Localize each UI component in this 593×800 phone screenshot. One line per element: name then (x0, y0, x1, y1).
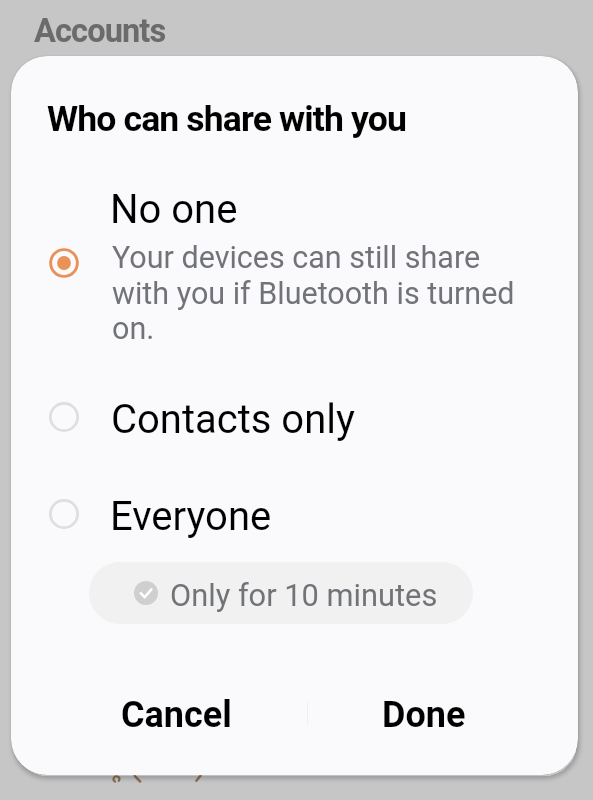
staticText: Who can share with you (47, 98, 406, 140)
staticText: Done (382, 694, 466, 736)
button[interactable]: No one (11, 180, 578, 356)
button[interactable]: Done (311, 694, 541, 761)
button[interactable]: Only for 10 minutes (89, 562, 473, 624)
staticText: No one (110, 186, 238, 233)
button[interactable]: Cancel (48, 694, 296, 761)
staticText: Your devices can still share with you if… (112, 240, 515, 346)
staticText: Everyone (110, 493, 272, 540)
button[interactable]: Everyone (11, 482, 578, 547)
staticText: Cancel (121, 694, 232, 736)
staticText: Contacts only (111, 396, 355, 443)
button[interactable]: Contacts only (11, 385, 578, 450)
staticText: Accounts (34, 12, 166, 50)
staticText: Only for 10 minutes (170, 577, 438, 613)
